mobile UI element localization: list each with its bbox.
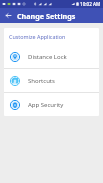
button[interactable]: Shortcuts [4,69,99,92]
staticText: Shortcuts [28,77,55,85]
staticText: App Security [28,101,64,109]
staticText: Customize Application [9,33,66,40]
button[interactable]: App Security [4,93,99,116]
staticText: 10:02 AM [80,1,101,7]
staticText: Change Settings [17,11,76,21]
staticText: Distance Lock [28,53,67,61]
button[interactable]: Back [3,10,14,21]
button[interactable]: Distance Lock [4,45,99,68]
